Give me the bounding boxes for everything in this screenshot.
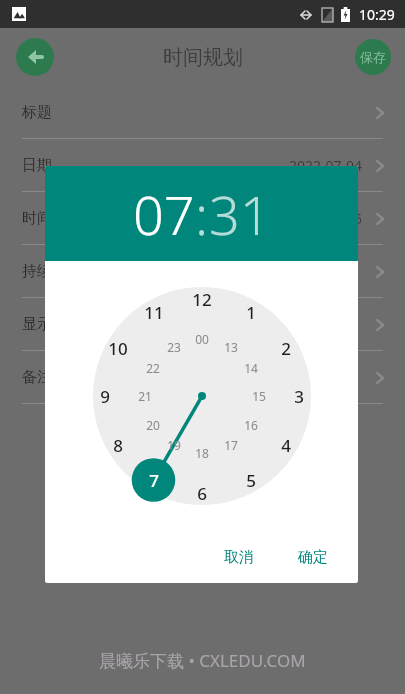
button[interactable]: 显示 — [0, 298, 405, 351]
staticText: 15 — [252, 388, 266, 404]
button[interactable]: Back — [16, 38, 54, 76]
staticText: 23 — [167, 339, 181, 355]
staticText: 4 — [281, 434, 291, 457]
staticText: 00 — [195, 331, 209, 347]
staticText: 22 — [146, 360, 160, 376]
button[interactable] — [93, 287, 311, 505]
staticText: 12 — [192, 288, 212, 311]
staticText: 标题 — [22, 103, 52, 122]
staticText: 显示 — [22, 315, 52, 334]
staticText: 时间 — [22, 209, 52, 228]
staticText: 14 — [244, 360, 258, 376]
button[interactable]: 保存 — [355, 39, 391, 75]
staticText: 晨曦乐下载 • CXLEDU.COM — [99, 649, 306, 672]
button[interactable]: 07 — [133, 177, 195, 251]
staticText: 备注 — [22, 368, 52, 387]
button[interactable]: 取消 — [210, 540, 268, 575]
staticText: 10 — [108, 337, 128, 360]
staticText: 日期 — [22, 156, 52, 175]
staticText: 2 — [281, 337, 291, 360]
staticText: 21 — [138, 388, 152, 404]
staticText: 保存 — [360, 49, 386, 65]
staticText: : — [195, 177, 209, 251]
staticText: 3 — [294, 385, 304, 408]
staticText: 17 — [224, 437, 238, 453]
button[interactable]: 备注 — [0, 351, 405, 404]
staticText: 6 — [197, 482, 207, 505]
button[interactable]: 确定 — [284, 540, 342, 575]
staticText: 11 — [144, 301, 164, 324]
button[interactable]: 标题 — [0, 86, 405, 139]
button[interactable]: 持续 — [0, 245, 405, 298]
staticText: 1 — [246, 301, 256, 324]
staticText: 取消 — [224, 548, 254, 567]
staticText: 9 — [100, 385, 110, 408]
staticText: 时间规划 — [163, 45, 243, 70]
button[interactable]: 时间 — [0, 192, 405, 245]
button[interactable]: 31 — [209, 177, 271, 251]
staticText: 18 — [195, 445, 209, 461]
staticText: 5 — [354, 209, 363, 228]
staticText: 5 — [246, 469, 256, 492]
staticText: 16 — [244, 417, 258, 433]
staticText: 20 — [146, 417, 160, 433]
staticText: 7 — [149, 469, 159, 492]
staticText: 确定 — [298, 548, 328, 567]
staticText: 8 — [113, 434, 123, 457]
staticText: 10:29 — [359, 5, 395, 24]
button[interactable]: 日期 — [0, 139, 405, 192]
staticText: 13 — [224, 339, 238, 355]
staticText: 持续 — [22, 262, 52, 281]
staticText: 2022-07-04 — [289, 156, 363, 175]
staticText: 19 — [167, 437, 181, 453]
